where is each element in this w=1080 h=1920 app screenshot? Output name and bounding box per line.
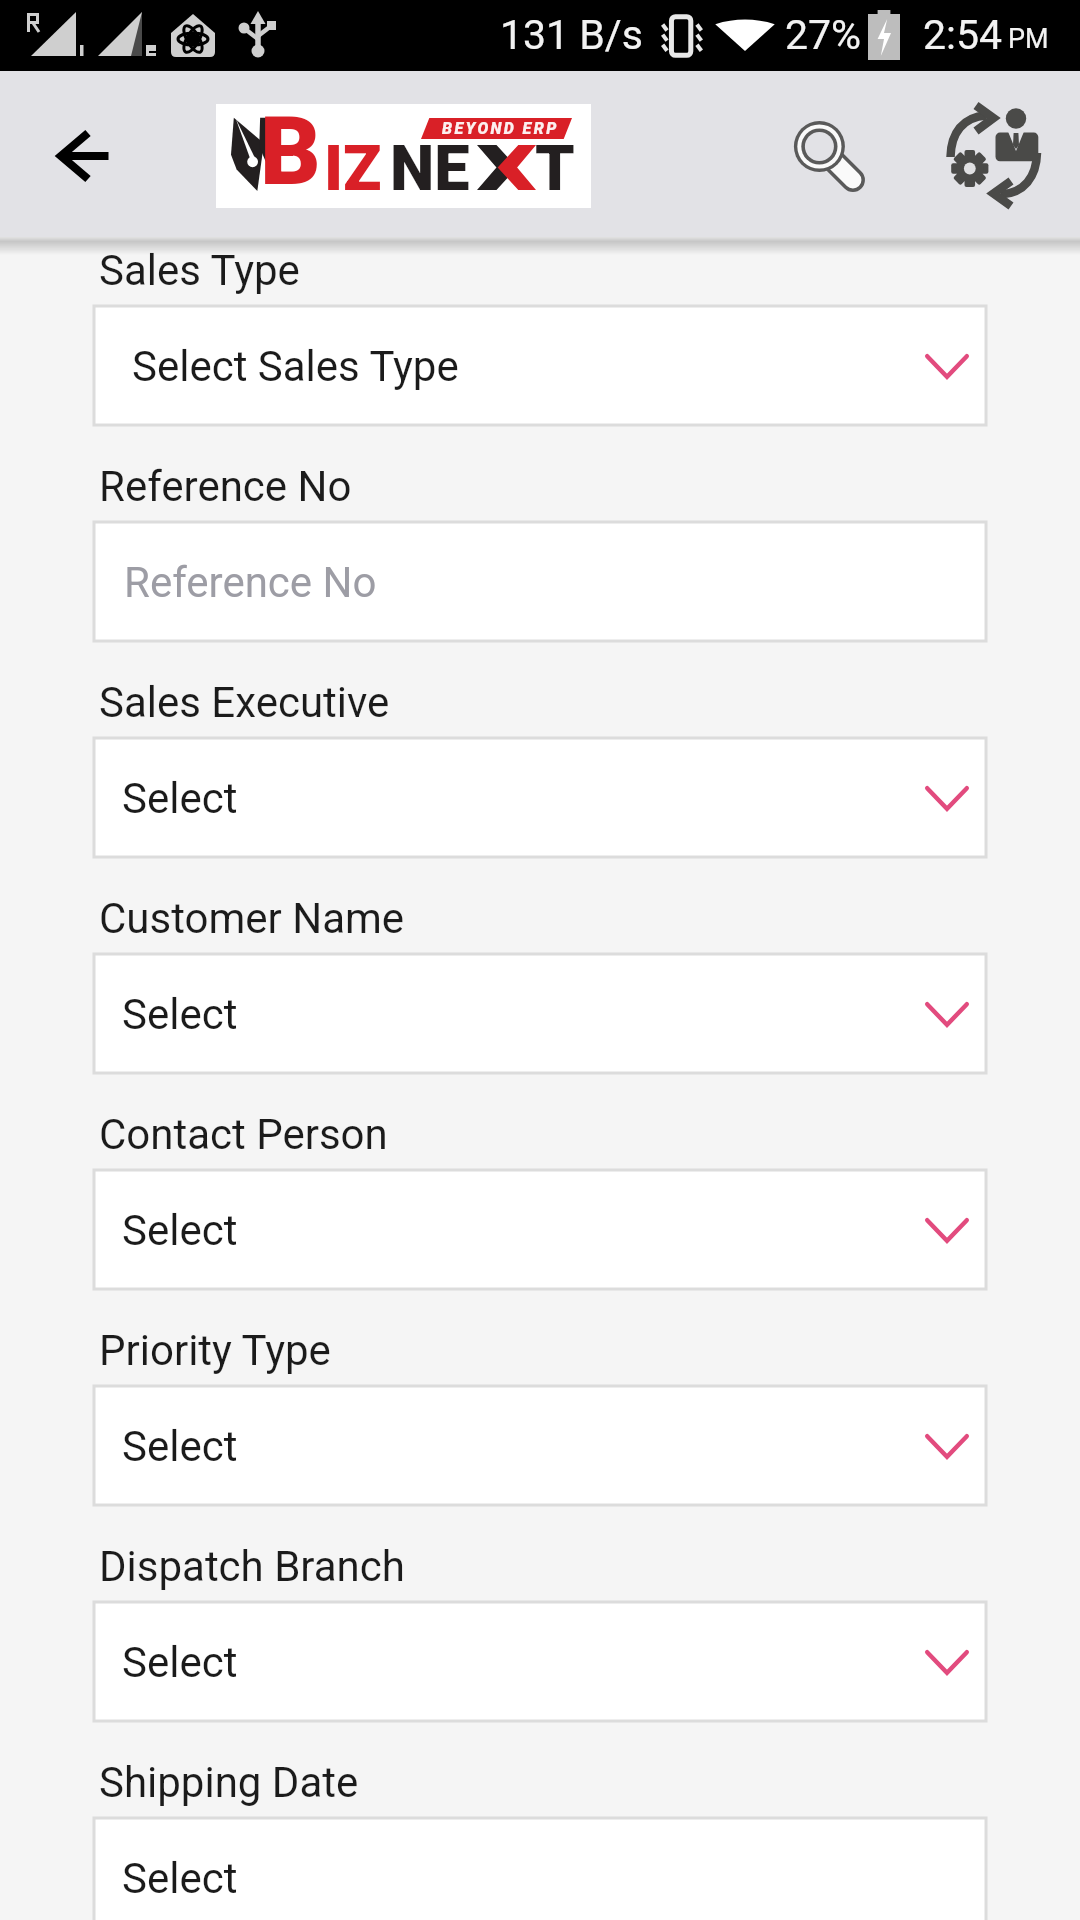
staticText: Reference No bbox=[99, 462, 352, 511]
staticText: Priority Type bbox=[99, 1326, 331, 1375]
button[interactable]: Select bbox=[94, 1602, 986, 1721]
staticText: Select bbox=[122, 774, 238, 823]
staticText: Sales Type bbox=[99, 246, 300, 295]
staticText: 2:54 bbox=[923, 11, 1003, 59]
staticText: Select bbox=[122, 1206, 238, 1255]
button[interactable]: Search bbox=[762, 90, 877, 205]
staticText: Select bbox=[122, 990, 238, 1039]
staticText: Select bbox=[122, 1422, 238, 1471]
staticText: BEYOND ERP bbox=[442, 119, 559, 138]
staticText: B bbox=[260, 97, 321, 201]
staticText: NE bbox=[390, 132, 470, 206]
button[interactable]: Back bbox=[25, 96, 145, 216]
staticText: Dispatch Branch bbox=[99, 1542, 405, 1591]
staticText: Customer Name bbox=[99, 894, 405, 943]
staticText: Contact Person bbox=[99, 1110, 388, 1159]
button[interactable]: Sync settings bbox=[945, 100, 1049, 210]
staticText: Select Sales Type bbox=[132, 342, 459, 391]
staticText: Sales Executive bbox=[99, 678, 390, 727]
staticText: Reference No bbox=[124, 558, 377, 607]
staticText: Shipping Date bbox=[99, 1758, 359, 1807]
staticText: T bbox=[535, 132, 575, 206]
staticText: Select bbox=[122, 1638, 238, 1687]
button[interactable]: Select bbox=[94, 1818, 986, 1920]
staticText: Select bbox=[122, 1854, 238, 1903]
button[interactable]: Select Sales Type bbox=[94, 306, 986, 425]
staticText: 131 B/s bbox=[500, 11, 643, 59]
button[interactable]: Select bbox=[94, 1386, 986, 1505]
staticText: PM bbox=[1008, 23, 1049, 55]
staticText: IZ bbox=[324, 132, 382, 206]
button[interactable]: Select bbox=[94, 738, 986, 857]
button[interactable]: Reference No bbox=[94, 522, 986, 641]
button[interactable]: Select bbox=[94, 1170, 986, 1289]
button[interactable]: Select bbox=[94, 954, 986, 1073]
staticText: 27% bbox=[785, 11, 862, 59]
